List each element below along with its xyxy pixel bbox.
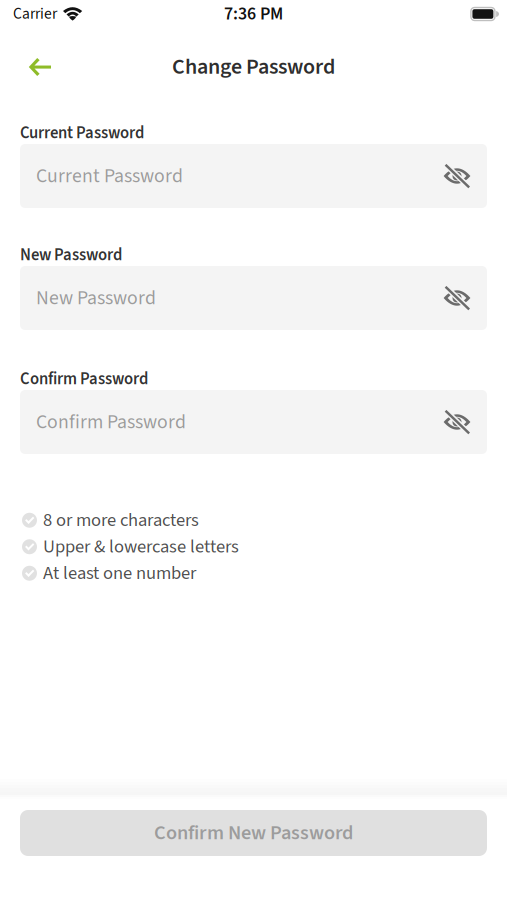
staticText: 7:36 PM xyxy=(224,1,283,27)
button[interactable]: Show Current Password xyxy=(434,153,480,199)
button[interactable]: Show New Password xyxy=(434,275,480,321)
staticText: Current Password xyxy=(20,121,144,145)
staticText: New Password xyxy=(20,243,122,267)
staticText: Confirm Password xyxy=(36,408,186,436)
staticText: Carrier xyxy=(13,3,57,25)
button[interactable]: Back xyxy=(16,45,64,89)
staticText: Confirm Password xyxy=(20,367,148,391)
staticText: Upper & lowercase letters xyxy=(43,534,239,560)
staticText: Confirm New Password xyxy=(154,819,353,847)
staticText: Current Password xyxy=(36,162,183,190)
staticText: 8 or more characters xyxy=(43,507,199,533)
staticText: New Password xyxy=(36,284,156,312)
button[interactable]: Confirm New Password xyxy=(20,810,487,856)
staticText: At least one number xyxy=(43,560,196,586)
staticText: Change Password xyxy=(172,51,335,83)
button[interactable]: Show Confirm Password xyxy=(434,399,480,445)
